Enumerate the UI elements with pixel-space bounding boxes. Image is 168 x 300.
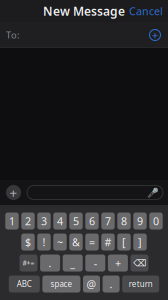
button[interactable]: =	[85, 233, 99, 250]
button[interactable]: #+=	[19, 254, 37, 271]
button[interactable]: ~	[53, 233, 67, 250]
staticText: $	[25, 235, 31, 249]
button[interactable]: 1	[5, 212, 19, 229]
button[interactable]: 8	[117, 212, 131, 229]
staticText: 7	[105, 214, 111, 228]
staticText: 6	[89, 214, 95, 228]
button[interactable]: ABC	[9, 275, 40, 292]
staticText: 8	[121, 214, 127, 228]
staticText: 2	[25, 214, 31, 228]
button[interactable]: More options	[5, 184, 22, 201]
button[interactable]: 7	[101, 212, 115, 229]
button[interactable]: .	[103, 275, 120, 292]
staticText: To:	[6, 29, 20, 41]
button[interactable]: return	[122, 275, 159, 292]
staticText: ]	[138, 235, 142, 249]
staticText: !	[42, 235, 45, 249]
button[interactable]: 5	[69, 212, 83, 229]
button[interactable]: space	[42, 275, 80, 292]
staticText: space	[50, 279, 72, 289]
staticText: 4	[57, 214, 63, 228]
button[interactable]: .	[40, 254, 60, 271]
staticText: +	[152, 28, 158, 42]
button[interactable]: Add contact	[146, 26, 164, 44]
button[interactable]: &	[69, 233, 83, 250]
staticText: @	[86, 277, 96, 291]
staticText: 5	[73, 214, 79, 228]
button[interactable]: _	[63, 254, 83, 271]
staticText: 1	[9, 214, 15, 228]
staticText: =	[89, 235, 95, 249]
staticText: ⌫	[133, 258, 146, 268]
button[interactable]: !	[37, 233, 51, 250]
button[interactable]: ]	[133, 233, 147, 250]
button[interactable]: +	[108, 254, 128, 271]
button[interactable]: #	[101, 233, 115, 250]
button[interactable]: [	[117, 233, 131, 250]
button[interactable]: 9	[133, 212, 147, 229]
staticText: .	[110, 277, 113, 291]
staticText: -	[94, 256, 97, 270]
staticText: 9	[137, 214, 143, 228]
staticText: New Message	[43, 3, 125, 19]
button[interactable]: 3	[37, 212, 51, 229]
staticText: 3	[41, 214, 47, 228]
button[interactable]: 6	[85, 212, 99, 229]
staticText: ABC	[17, 279, 32, 289]
staticText: 0	[153, 214, 159, 228]
staticText: .	[49, 256, 52, 270]
button[interactable]: 0	[149, 212, 163, 229]
staticText: _	[70, 256, 75, 270]
button[interactable]: @	[83, 275, 100, 292]
staticText: #	[104, 235, 111, 249]
button[interactable]: 2	[21, 212, 35, 229]
staticText: Cancel	[129, 4, 163, 18]
button[interactable]: 4	[53, 212, 67, 229]
staticText: +	[115, 256, 121, 270]
staticText: return	[129, 279, 153, 289]
button[interactable]: Cancel	[124, 0, 168, 22]
staticText: ~	[57, 235, 63, 249]
staticText: +	[9, 184, 17, 201]
staticText: &	[72, 235, 80, 249]
staticText: [	[122, 235, 126, 249]
button[interactable]: $	[21, 233, 35, 250]
staticText: #+=	[22, 259, 34, 267]
button[interactable]: -	[85, 254, 105, 271]
staticText: 🎤	[147, 187, 159, 198]
button[interactable]: ⌫	[130, 254, 148, 271]
